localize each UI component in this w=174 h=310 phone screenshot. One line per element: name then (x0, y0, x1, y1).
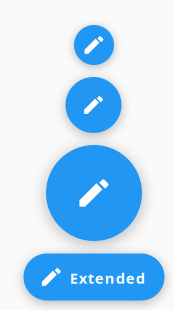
button[interactable]: Edit (65, 77, 121, 133)
button[interactable]: Edit (74, 25, 114, 65)
button[interactable]: Edit (46, 145, 142, 241)
button[interactable]: Extended (23, 253, 164, 300)
staticText: Extended (70, 268, 145, 288)
